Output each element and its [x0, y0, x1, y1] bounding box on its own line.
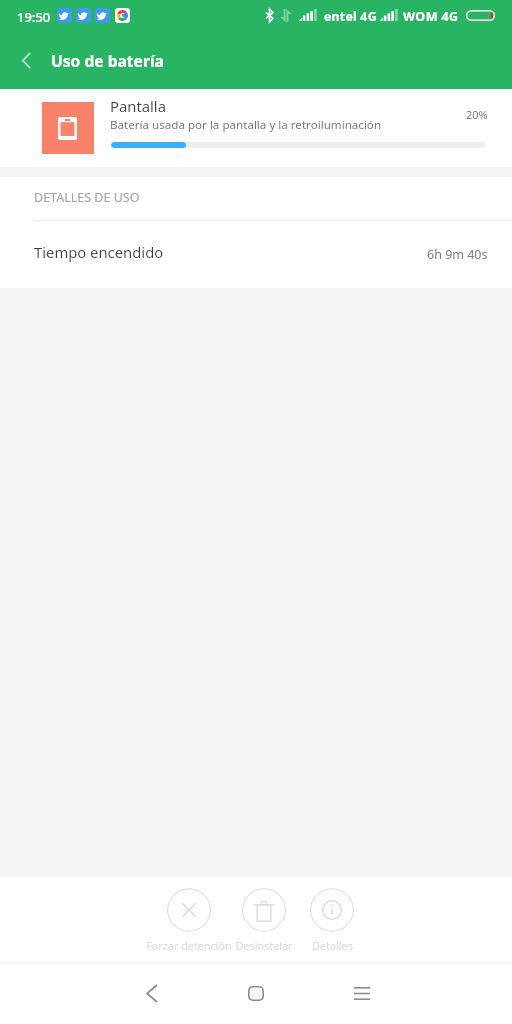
button[interactable]: Pantalla	[0, 89, 512, 167]
button[interactable]: Tiempo encendido	[0, 221, 512, 288]
staticText: 20%	[466, 107, 488, 122]
button[interactable]: Back	[4, 38, 49, 83]
staticText: Detalles	[312, 938, 353, 953]
staticText: 6h 9m 40s	[427, 246, 488, 263]
button[interactable]: Menu	[334, 963, 390, 1024]
staticText: Batería usada por la pantalla y la retro…	[110, 117, 382, 133]
staticText: 19:50	[17, 8, 51, 26]
staticText: DETALLES DE USO	[34, 189, 140, 206]
staticText: Uso de batería	[51, 50, 164, 71]
button[interactable]: Desinstalar	[219, 877, 309, 962]
staticText: WOM 4G	[403, 8, 459, 25]
staticText: Tiempo encendido	[34, 242, 164, 262]
staticText: entel 4G	[324, 8, 377, 25]
button[interactable]: Detalles	[287, 877, 377, 962]
button[interactable]: Home	[228, 963, 284, 1024]
staticText: Pantalla	[110, 96, 166, 116]
staticText: Forzar detención	[146, 938, 232, 953]
button[interactable]: Forzar detención	[144, 877, 234, 962]
staticText: Desinstalar	[235, 938, 293, 953]
button[interactable]: Back	[124, 963, 180, 1024]
